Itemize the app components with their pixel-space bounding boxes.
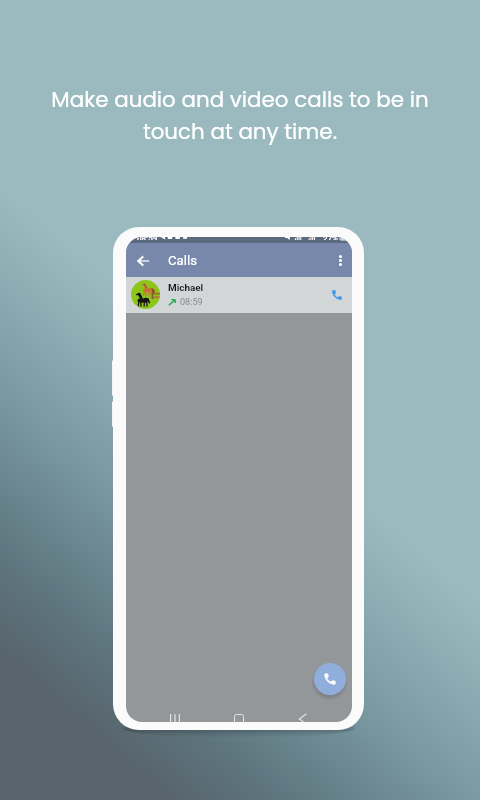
button[interactable]: Home: [227, 706, 251, 722]
staticText: Make audio and video calls to be in touc…: [46, 85, 434, 146]
staticText: Michael: [168, 282, 204, 294]
staticText: Calls: [168, 253, 197, 268]
button[interactable]: Michael: [126, 277, 352, 313]
staticText: 27%: [323, 237, 338, 240]
button[interactable]: Back: [290, 706, 314, 722]
staticText: 08:59: [137, 237, 158, 240]
button[interactable]: New call: [314, 663, 346, 695]
button[interactable]: Recents: [163, 706, 187, 722]
button[interactable]: Call Michael: [324, 282, 350, 308]
staticText: 08:59: [180, 297, 203, 308]
button[interactable]: More options: [327, 247, 352, 273]
button[interactable]: Back: [129, 247, 157, 275]
